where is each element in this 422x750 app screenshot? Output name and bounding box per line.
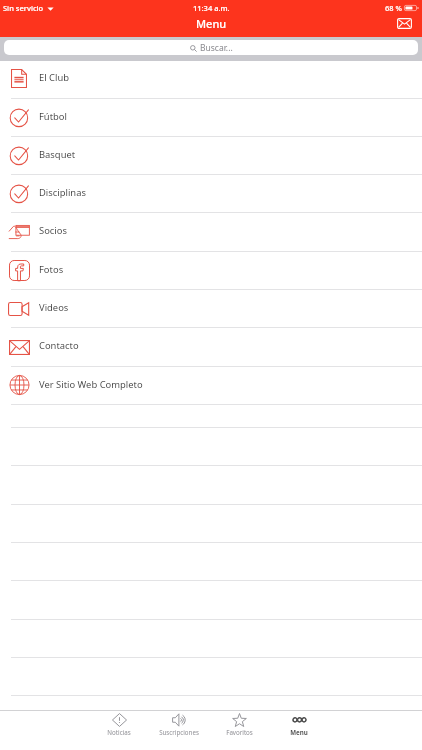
staticText: 11:34 a.m. bbox=[193, 3, 230, 13]
staticText: 68 % bbox=[385, 3, 402, 13]
button[interactable]: Ver Sitio Web Completo bbox=[0, 366, 422, 404]
button[interactable]: Buscar... bbox=[4, 40, 418, 55]
button[interactable]: Menu bbox=[269, 711, 329, 736]
staticText: Ver Sitio Web Completo bbox=[39, 378, 143, 391]
staticText: Menu bbox=[196, 16, 227, 31]
staticText: Contacto bbox=[39, 339, 79, 352]
staticText: Favoritos bbox=[226, 728, 253, 736]
button[interactable]: Fotos bbox=[0, 251, 422, 289]
button[interactable]: Noticias bbox=[89, 711, 149, 736]
staticText: El Club bbox=[39, 71, 70, 84]
staticText: Noticias bbox=[107, 728, 131, 736]
button[interactable]: Fútbol bbox=[0, 98, 422, 136]
button[interactable]: Socios bbox=[0, 212, 422, 250]
button[interactable]: Mail bbox=[394, 13, 414, 33]
staticText: Suscripciones bbox=[159, 728, 199, 736]
staticText: Disciplinas bbox=[39, 186, 86, 199]
staticText: Sin servicio bbox=[3, 3, 44, 13]
button[interactable]: El Club bbox=[0, 60, 422, 97]
button[interactable]: Basquet bbox=[0, 136, 422, 174]
staticText: Basquet bbox=[39, 148, 76, 161]
button[interactable]: Favoritos bbox=[209, 711, 269, 736]
staticText: Fútbol bbox=[39, 110, 67, 123]
button[interactable]: Suscripciones bbox=[149, 711, 209, 736]
staticText: Fotos bbox=[39, 263, 64, 276]
button[interactable]: Contacto bbox=[0, 327, 422, 365]
staticText: Videos bbox=[39, 301, 69, 314]
button[interactable]: Videos bbox=[0, 289, 422, 327]
staticText: Menu bbox=[290, 728, 308, 736]
staticText: Buscar... bbox=[200, 42, 233, 54]
button[interactable]: Disciplinas bbox=[0, 174, 422, 212]
staticText: Socios bbox=[39, 224, 67, 237]
